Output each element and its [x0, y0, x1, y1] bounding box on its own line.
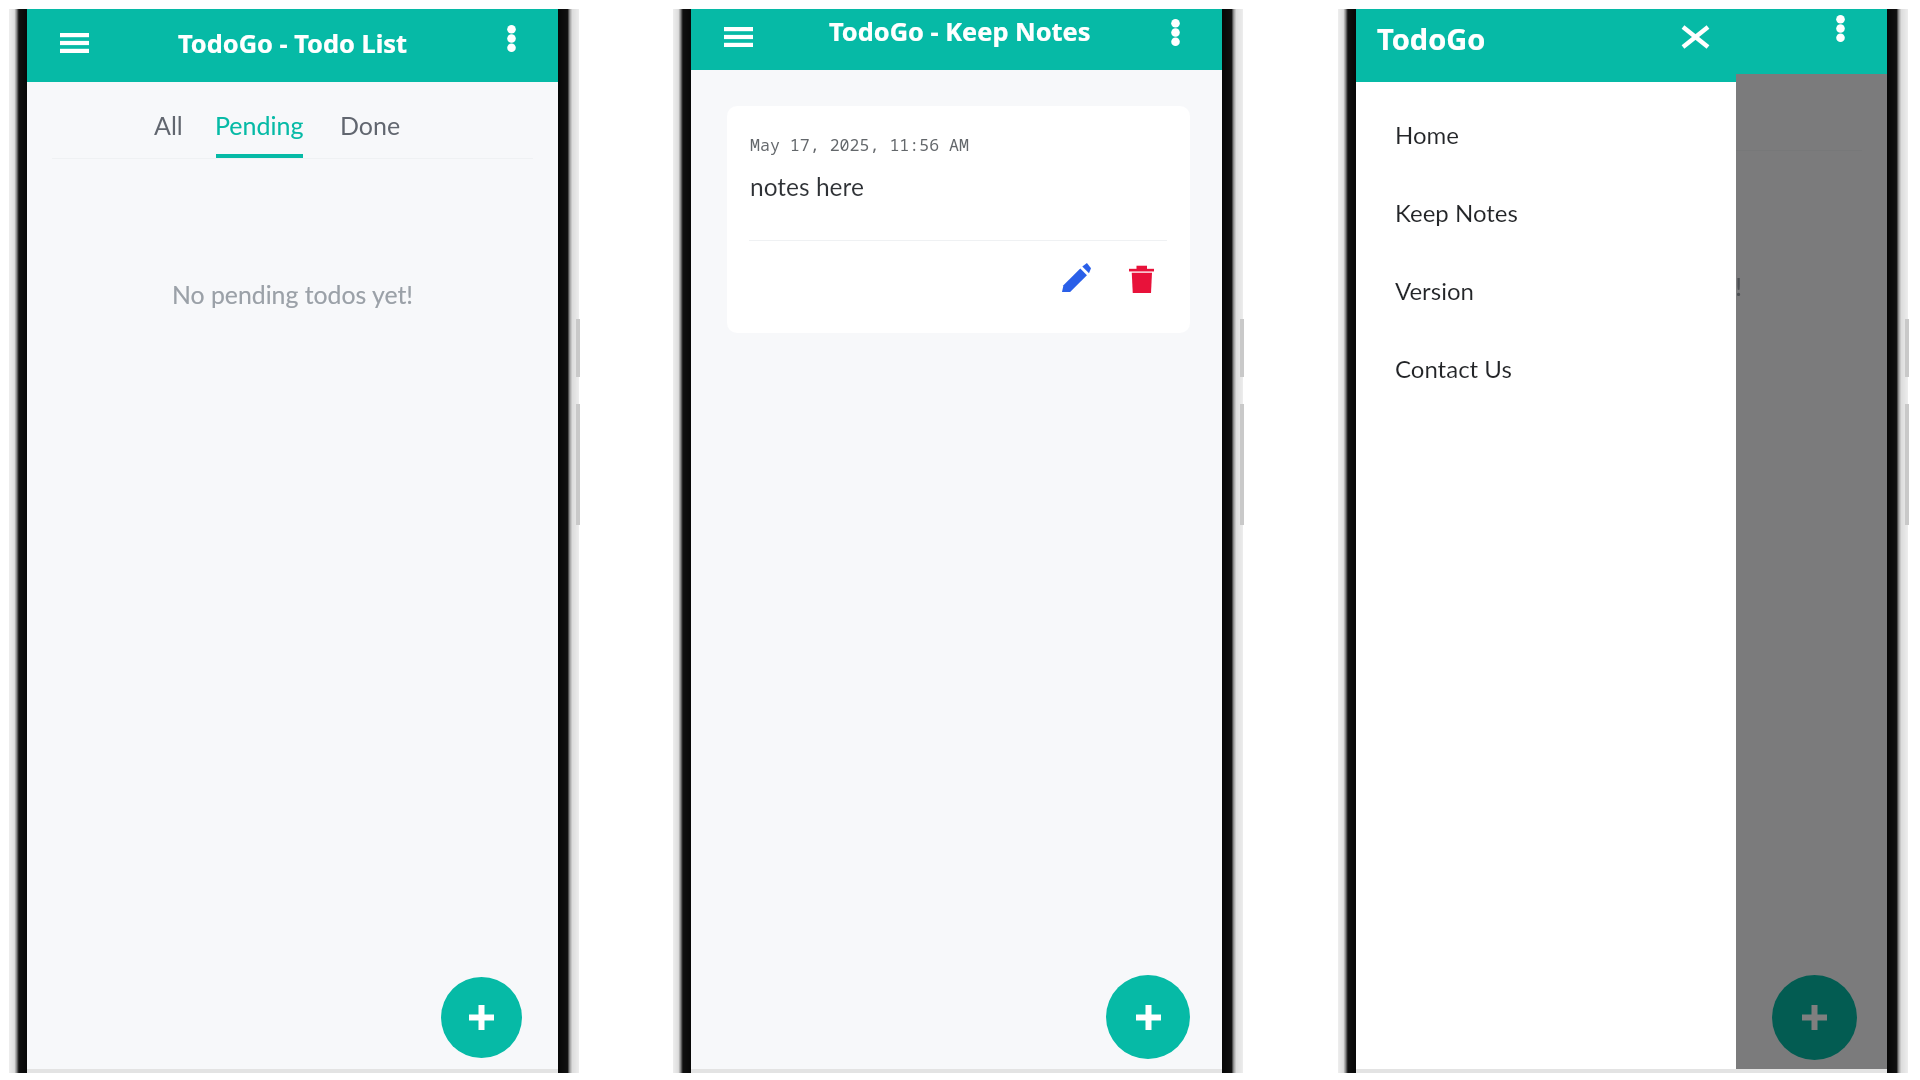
staticText: TodoGo - Keep Notes — [829, 14, 1091, 49]
button[interactable]: Keep Notes — [1356, 173, 1736, 251]
button[interactable]: Add — [441, 977, 522, 1058]
staticText: Home — [1395, 120, 1459, 149]
staticText: All — [154, 110, 183, 140]
button[interactable]: All — [130, 82, 206, 159]
button[interactable]: Close drawer — [1669, 11, 1721, 63]
button[interactable]: All — [1459, 74, 1535, 151]
staticText: Version — [1395, 276, 1474, 305]
staticText: Pending — [215, 110, 304, 140]
button[interactable]: Add — [1772, 975, 1857, 1060]
button[interactable]: Done — [1655, 74, 1743, 151]
button[interactable]: Pending — [1535, 74, 1642, 151]
staticText: notes here — [750, 172, 864, 201]
staticText: May 17, 2025, 11:56 AM — [750, 133, 970, 156]
staticText: Contact Us — [1395, 354, 1512, 383]
button[interactable]: Delete note — [1115, 251, 1167, 303]
staticText: TodoGo - Todo List — [1507, 22, 1737, 57]
button[interactable]: More options — [485, 12, 537, 64]
staticText: No pending todos yet! — [27, 280, 558, 310]
button[interactable]: Open navigation drawer — [1375, 11, 1431, 67]
button[interactable]: Pending — [206, 82, 313, 159]
button[interactable]: Home — [1356, 95, 1736, 173]
button[interactable]: Version — [1356, 251, 1736, 329]
button[interactable]: Open navigation drawer — [46, 15, 102, 71]
staticText: TodoGo - Todo List — [178, 26, 408, 61]
staticText: Done — [340, 110, 401, 140]
staticText: No pending todos yet! — [1356, 272, 1887, 302]
button[interactable]: Edit note — [1050, 251, 1102, 303]
staticText: TodoGo — [1377, 19, 1486, 58]
button[interactable]: Open navigation drawer — [710, 9, 766, 65]
button[interactable]: Add — [1106, 975, 1190, 1059]
button[interactable]: Done — [326, 82, 414, 159]
button[interactable]: More options — [1149, 9, 1201, 58]
button[interactable]: More options — [1814, 9, 1866, 54]
staticText: Keep Notes — [1395, 198, 1518, 227]
button[interactable]: Contact Us — [1356, 329, 1736, 407]
button[interactable]: May 17, 2025, 11:56 AM — [727, 106, 1190, 333]
